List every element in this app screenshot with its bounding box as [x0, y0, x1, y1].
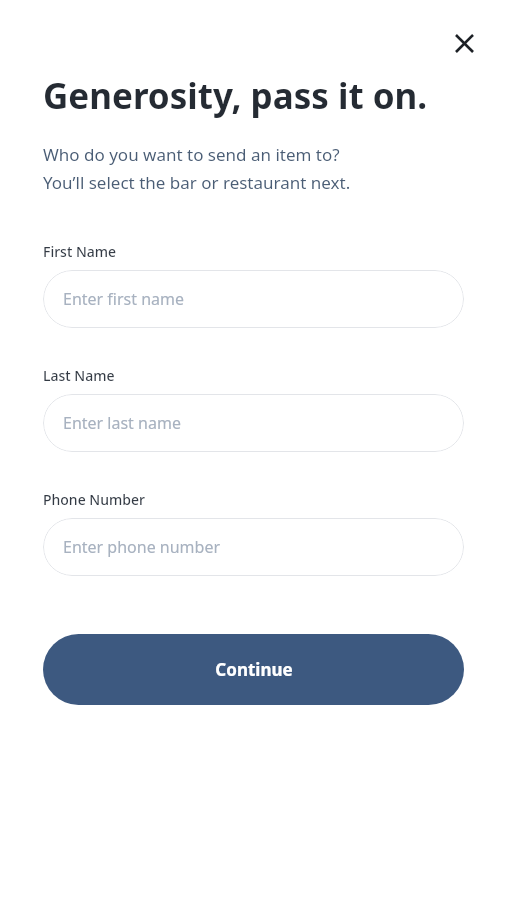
- staticText: First Name: [43, 242, 117, 261]
- staticText: Enter last name: [63, 412, 181, 434]
- staticText: Enter first name: [63, 288, 185, 310]
- staticText: Last Name: [43, 366, 115, 385]
- button[interactable]: Enter first name: [43, 270, 464, 328]
- button[interactable]: Close: [440, 19, 488, 67]
- staticText: Who do you want to send an item to? You’…: [43, 143, 464, 194]
- staticText: Generosity, pass it on.: [43, 72, 464, 120]
- staticText: Continue: [215, 658, 293, 681]
- button[interactable]: Enter last name: [43, 394, 464, 452]
- staticText: Enter phone number: [63, 536, 221, 558]
- button[interactable]: Continue: [43, 634, 464, 705]
- button[interactable]: Enter phone number: [43, 518, 464, 576]
- staticText: Phone Number: [43, 490, 145, 509]
